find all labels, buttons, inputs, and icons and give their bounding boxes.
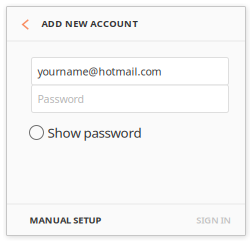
staticText: Password	[37, 92, 84, 106]
button[interactable]: Back	[6, 6, 41, 40]
staticText: Show password	[47, 124, 141, 141]
staticText: yourname@hotmail.com	[37, 64, 161, 78]
button[interactable]: yourname@hotmail.com	[31, 57, 228, 85]
staticText: MANUAL SETUP	[29, 214, 102, 226]
staticText: SIGN IN	[196, 214, 230, 226]
button[interactable]: SIGN IN	[184, 204, 245, 235]
button[interactable]: Password	[31, 85, 228, 112]
button[interactable]: MANUAL SETUP	[6, 204, 114, 235]
staticText: ADD NEW ACCOUNT	[41, 17, 137, 30]
button[interactable]: Show password	[6, 119, 245, 145]
